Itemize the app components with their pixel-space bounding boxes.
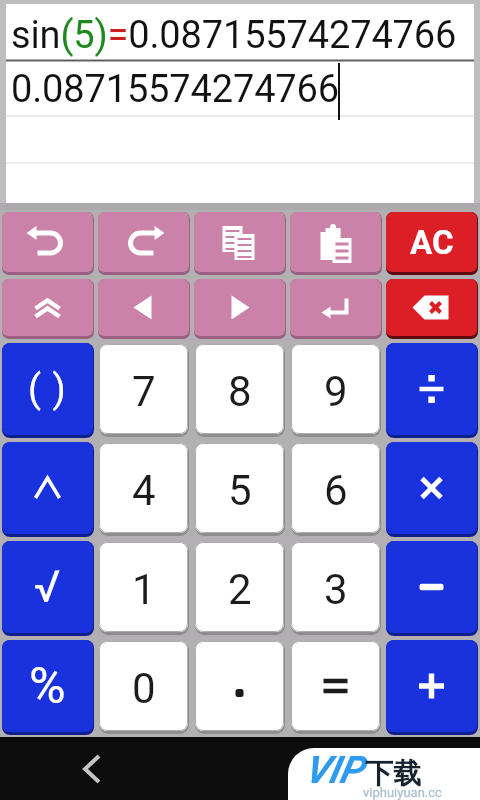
button[interactable] [291,641,381,734]
button[interactable] [386,541,478,636]
button[interactable] [386,279,478,339]
button[interactable]: 8 [195,344,285,437]
button[interactable]: AC [386,212,478,275]
staticText: 9 [324,367,348,416]
button[interactable] [2,279,94,339]
staticText: ( ) [28,367,67,412]
button[interactable]: 3 [291,542,381,635]
staticText: 1 [132,565,156,614]
button[interactable]: 7 [99,344,189,437]
staticText: AC [410,223,454,262]
staticText: 6 [324,466,348,515]
button[interactable] [290,212,382,275]
staticText: 7 [132,367,156,416]
button[interactable] [386,343,478,438]
staticText: sin(5)=0.08715574274766 [11,13,457,58]
button[interactable]: ( ) [2,343,94,438]
staticText: 5 [228,466,252,515]
staticText: 下载 [365,756,421,791]
staticText: VIP [304,748,363,793]
button[interactable] [70,747,114,791]
button[interactable] [386,442,478,537]
button[interactable] [2,442,94,537]
button[interactable]: 6 [291,443,381,536]
button[interactable]: % [2,640,94,735]
button[interactable]: VIP [288,748,480,800]
button[interactable] [195,641,285,734]
staticText: 0 [132,664,156,713]
staticText: 2 [228,565,252,614]
button[interactable]: 4 [99,443,189,536]
button[interactable] [2,212,94,275]
staticText: 8 [228,367,252,416]
staticText: √ [34,561,61,613]
staticText: 0.08715574274766 [11,67,339,112]
button[interactable] [386,640,478,735]
button[interactable]: √ [2,541,94,636]
button[interactable]: 0 [99,641,189,734]
staticText: 4 [132,466,156,515]
button[interactable]: 9 [291,344,381,437]
button[interactable] [98,212,190,275]
button[interactable]: 5 [195,443,285,536]
button[interactable] [194,212,286,275]
staticText: 3 [324,565,348,614]
button[interactable] [98,279,190,339]
staticText: viphuiyuan.cc [363,785,442,800]
button[interactable]: 1 [99,542,189,635]
button[interactable]: 2 [195,542,285,635]
button[interactable] [290,279,382,339]
staticText: % [29,657,66,716]
button[interactable] [194,279,286,339]
